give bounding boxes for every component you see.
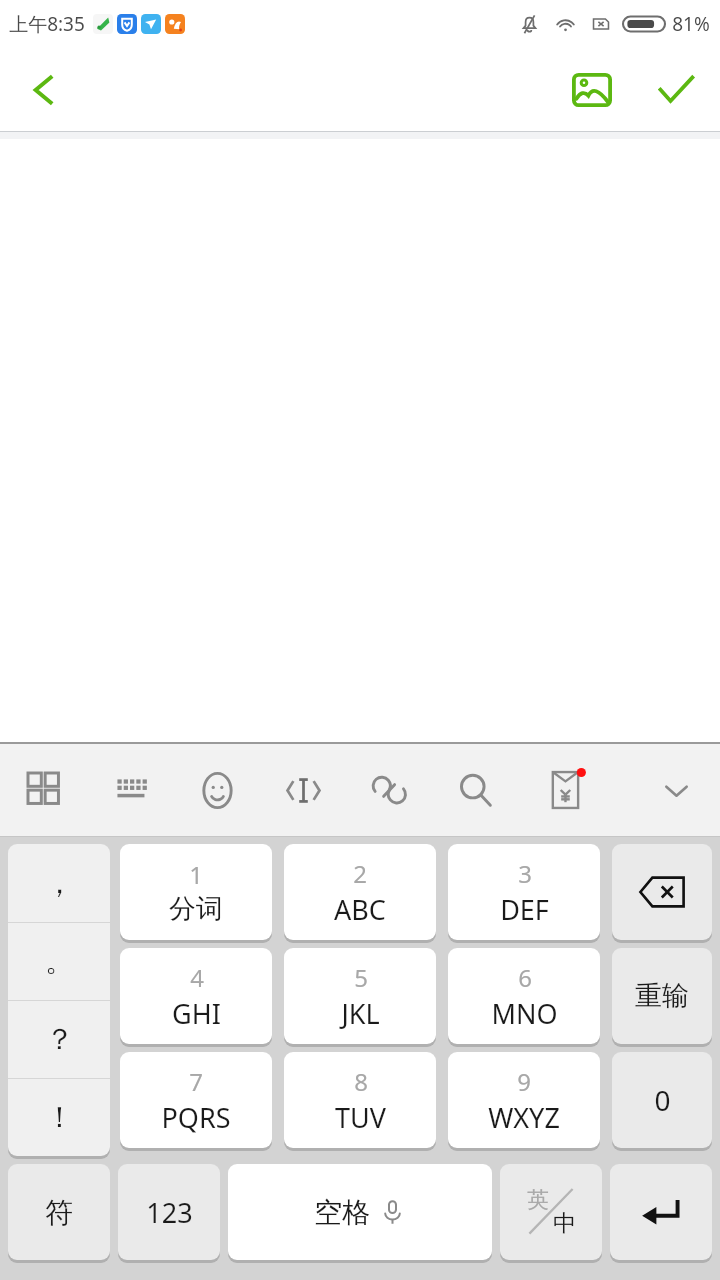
staticText: 上午8:35: [9, 11, 85, 37]
staticText: 1: [189, 858, 203, 891]
staticText: 。: [45, 943, 74, 980]
button[interactable]: Back: [12, 57, 78, 123]
button[interactable]: 空格: [228, 1164, 492, 1260]
staticText: 3: [518, 857, 532, 890]
staticText: MNO: [491, 995, 558, 1032]
staticText: 分词: [169, 892, 223, 926]
button[interactable]: 0: [612, 1052, 712, 1148]
staticText: DEF: [500, 891, 549, 928]
button[interactable]: Done: [644, 58, 708, 122]
staticText: 2: [353, 857, 367, 890]
button[interactable]: 9: [448, 1052, 600, 1148]
button[interactable]: 符: [8, 1164, 110, 1260]
staticText: 123: [146, 1194, 193, 1231]
staticText: WXYZ: [488, 1099, 560, 1136]
staticText: ABC: [334, 891, 386, 928]
button[interactable]: 4: [120, 948, 272, 1044]
button[interactable]: 重输: [612, 948, 712, 1044]
staticText: 英: [527, 1186, 549, 1214]
staticText: GHI: [172, 995, 221, 1032]
staticText: 4: [190, 961, 204, 994]
button[interactable]: Search: [442, 744, 508, 836]
staticText: ！: [45, 1099, 74, 1136]
button[interactable]: 英: [500, 1164, 602, 1260]
button[interactable]: 2: [284, 844, 436, 940]
staticText: 81%: [672, 11, 710, 37]
staticText: 7: [189, 1065, 203, 1098]
staticText: PQRS: [161, 1099, 231, 1136]
staticText: 9: [517, 1065, 531, 1098]
staticText: ？: [45, 1021, 74, 1058]
button[interactable]: Attachments: [356, 744, 422, 836]
staticText: 符: [45, 1195, 73, 1230]
button[interactable]: 3: [448, 844, 600, 940]
button[interactable]: Red packet: [535, 744, 601, 836]
button[interactable]: Cursor editing: [270, 744, 336, 836]
button[interactable]: Keyboard layouts: [12, 744, 78, 836]
button[interactable]: Switch keyboard: [98, 744, 164, 836]
button[interactable]: Insert image: [560, 58, 624, 122]
button[interactable]: [612, 844, 712, 940]
staticText: 空格: [314, 1195, 370, 1230]
button[interactable]: ！: [8, 1079, 110, 1156]
button[interactable]: 1: [120, 844, 272, 940]
staticText: TUV: [335, 1099, 386, 1136]
button[interactable]: 5: [284, 948, 436, 1044]
button[interactable]: 8: [284, 1052, 436, 1148]
staticText: 重输: [635, 979, 689, 1013]
button[interactable]: [610, 1164, 712, 1260]
staticText: ，: [45, 865, 74, 902]
button[interactable]: 123: [118, 1164, 220, 1260]
staticText: 8: [354, 1065, 368, 1098]
button[interactable]: 6: [448, 948, 600, 1044]
button[interactable]: ？: [8, 1001, 110, 1078]
button[interactable]: 。: [8, 923, 110, 1000]
button[interactable]: 7: [120, 1052, 272, 1148]
button[interactable]: Emoji: [184, 744, 250, 836]
staticText: 0: [654, 1081, 671, 1119]
staticText: JKL: [341, 995, 380, 1032]
button[interactable]: Hide keyboard: [643, 744, 709, 836]
button[interactable]: ，: [8, 844, 110, 922]
staticText: 6: [518, 961, 532, 994]
staticText: 中: [553, 1209, 576, 1238]
staticText: 5: [354, 961, 368, 994]
